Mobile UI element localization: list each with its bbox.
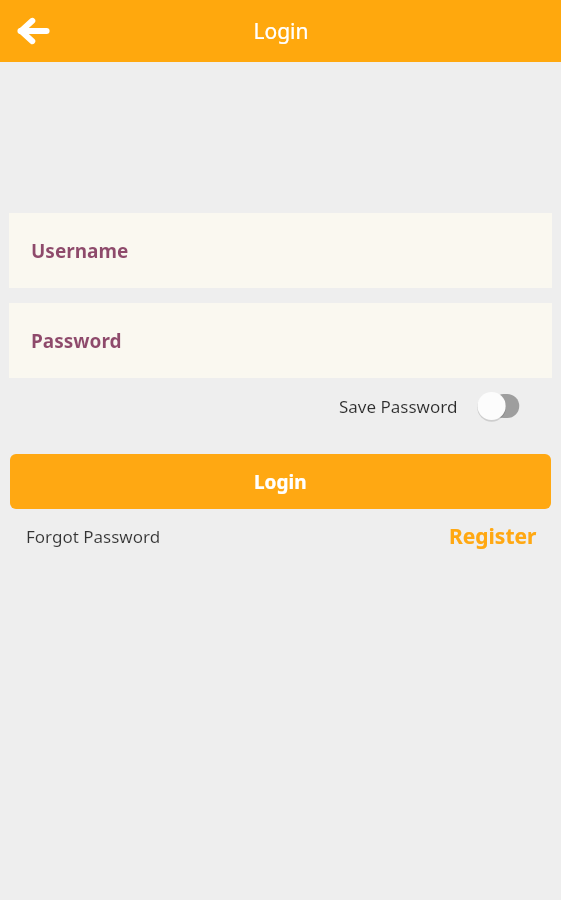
button[interactable]: Username: [9, 213, 552, 288]
button[interactable]: Back: [6, 4, 60, 58]
button[interactable]: Login: [10, 454, 551, 509]
button[interactable]: Forgot Password: [18, 521, 169, 552]
button[interactable]: Register: [441, 518, 545, 555]
staticText: Login: [253, 17, 309, 46]
staticText: Password: [31, 328, 122, 354]
button[interactable]: Save Password toggle: [476, 391, 522, 421]
staticText: Username: [31, 238, 129, 264]
staticText: Login: [254, 469, 307, 495]
staticText: Forgot Password: [26, 525, 161, 548]
button[interactable]: Save Password: [331, 391, 522, 421]
staticText: Register: [449, 522, 537, 551]
staticText: Save Password: [339, 395, 458, 418]
button[interactable]: Password: [9, 303, 552, 378]
